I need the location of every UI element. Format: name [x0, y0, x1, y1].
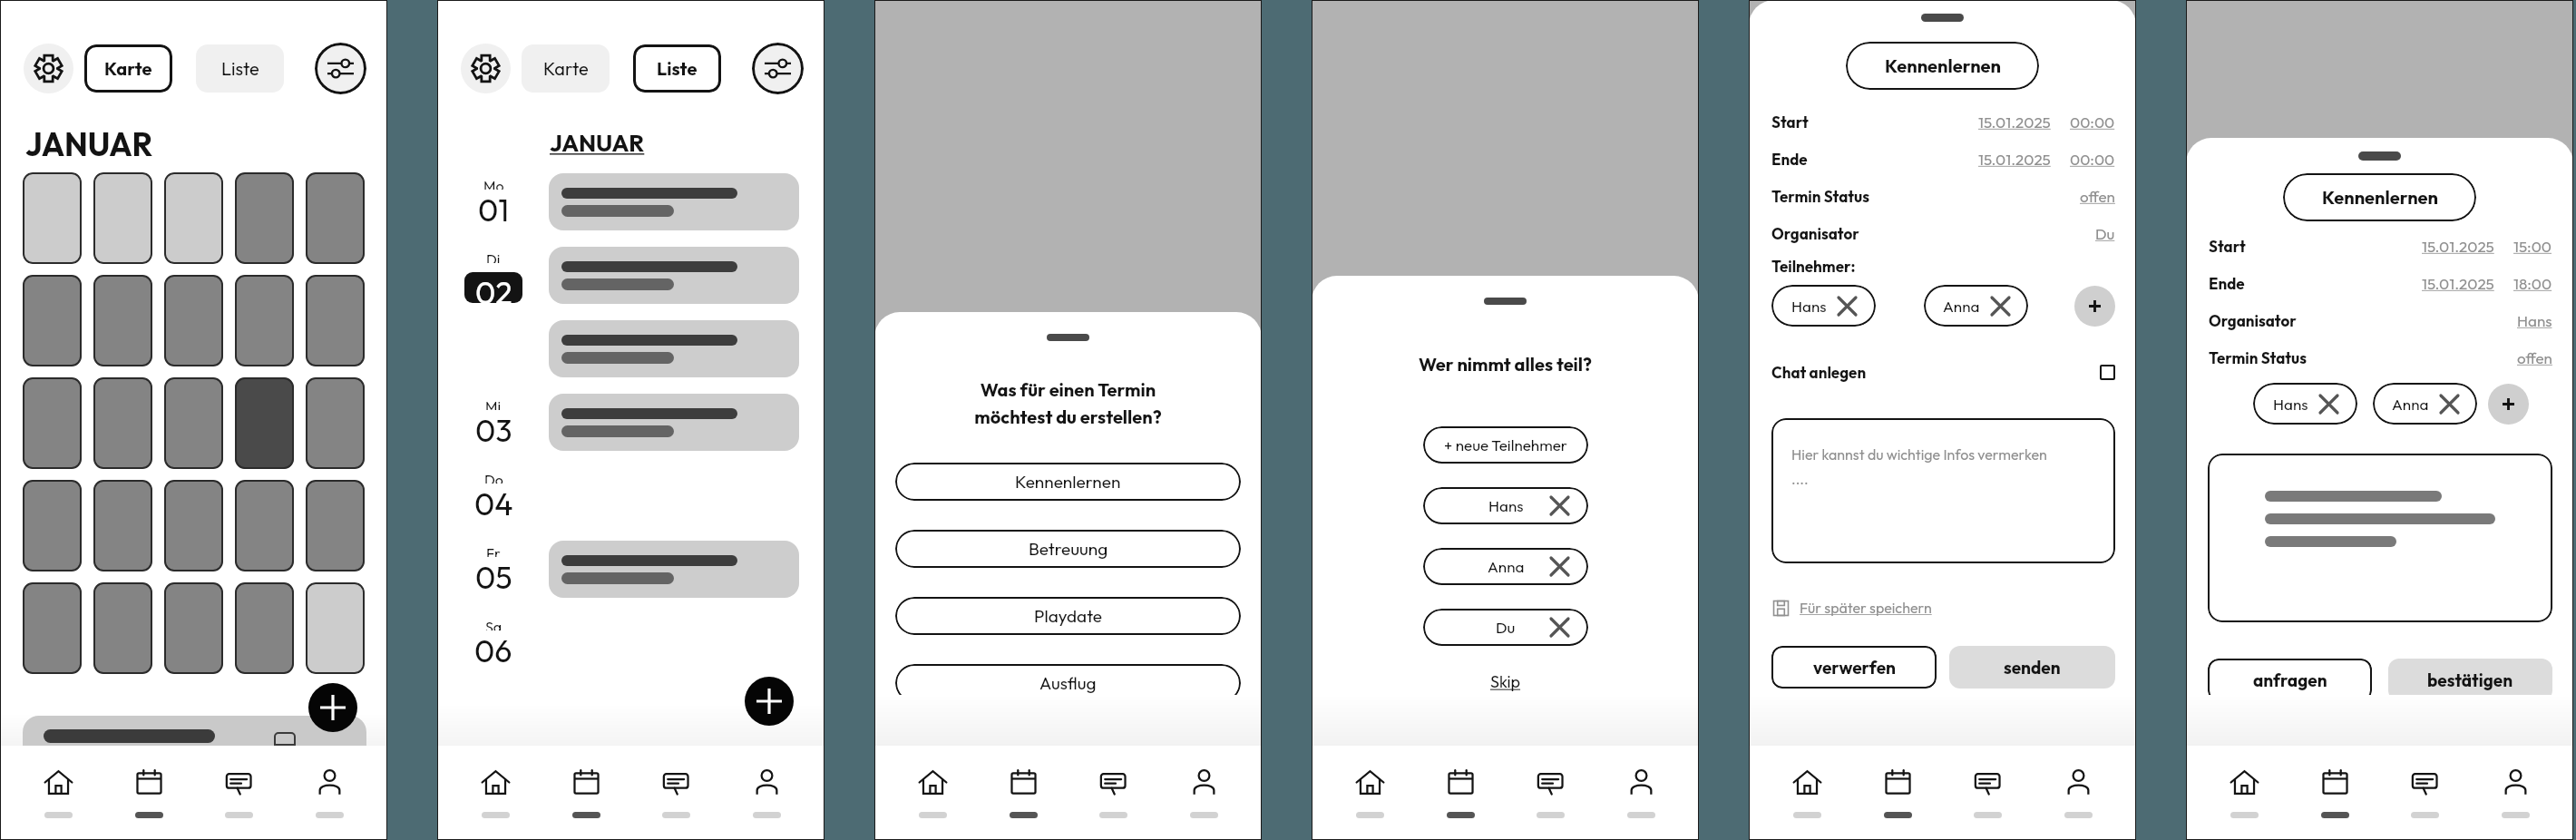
- button[interactable]: Kennenlernen: [1846, 42, 2039, 90]
- button[interactable]: Hans: [2517, 311, 2552, 330]
- button[interactable]: Filter: [752, 43, 804, 94]
- button[interactable]: Neuer Termin: [745, 677, 794, 726]
- button[interactable]: Home: [25, 746, 91, 840]
- button[interactable]: [235, 172, 294, 264]
- button[interactable]: 18:00: [2513, 274, 2552, 293]
- button[interactable]: Für später speichern: [1772, 599, 1932, 617]
- button[interactable]: Einstellungen: [24, 44, 73, 93]
- button[interactable]: Kalender: [1865, 746, 1930, 840]
- button[interactable]: [93, 480, 152, 571]
- button[interactable]: 15.01.2025: [1978, 150, 2051, 169]
- button[interactable]: Kalender: [2302, 746, 2367, 840]
- button[interactable]: Kennenlernen: [2283, 173, 2476, 221]
- button[interactable]: Liste: [633, 44, 721, 93]
- button[interactable]: Profil: [734, 746, 799, 840]
- button[interactable]: [549, 247, 799, 304]
- button[interactable]: [549, 173, 799, 230]
- button[interactable]: Teilnehmer hinzufügen: [2488, 384, 2529, 425]
- button[interactable]: [549, 541, 799, 598]
- button[interactable]: Hans: [1771, 285, 1876, 327]
- button[interactable]: offen: [2517, 348, 2552, 367]
- button[interactable]: [23, 480, 82, 571]
- button[interactable]: Anna: [2373, 383, 2477, 425]
- button[interactable]: Kalender: [990, 746, 1056, 840]
- button[interactable]: Kennenlernen: [895, 463, 1241, 501]
- button[interactable]: senden: [1949, 646, 2115, 689]
- button[interactable]: [164, 480, 223, 571]
- button[interactable]: Home: [1337, 746, 1402, 840]
- button[interactable]: [549, 320, 799, 377]
- button[interactable]: Teilnehmer hinzufügen: [2074, 286, 2115, 327]
- button[interactable]: Neuer Termin: [308, 683, 357, 732]
- button[interactable]: [235, 275, 294, 366]
- button[interactable]: [23, 275, 82, 366]
- button[interactable]: Hans: [1423, 487, 1588, 524]
- button[interactable]: Filter: [315, 43, 366, 94]
- button[interactable]: [235, 582, 294, 674]
- button[interactable]: Chat anlegen: [2100, 365, 2115, 380]
- button[interactable]: [164, 275, 223, 366]
- button[interactable]: Profil: [2483, 746, 2548, 840]
- button[interactable]: Hier kannst du wichtige Infos vermerken …: [1771, 418, 2115, 563]
- button[interactable]: Karte: [522, 44, 610, 93]
- button[interactable]: Skip: [1312, 671, 1699, 692]
- button[interactable]: [235, 377, 294, 469]
- button[interactable]: 00:00: [2070, 112, 2115, 132]
- button[interactable]: [93, 582, 152, 674]
- button[interactable]: [23, 716, 366, 746]
- button[interactable]: [306, 275, 365, 366]
- button[interactable]: Home: [900, 746, 965, 840]
- button[interactable]: Chat: [206, 746, 271, 840]
- button[interactable]: Profil: [1608, 746, 1673, 840]
- button[interactable]: [23, 582, 82, 674]
- button[interactable]: Profil: [2045, 746, 2111, 840]
- button[interactable]: [306, 377, 365, 469]
- button[interactable]: Du: [2095, 224, 2115, 243]
- button[interactable]: Kalender: [1428, 746, 1493, 840]
- button[interactable]: [235, 480, 294, 571]
- button[interactable]: Karte: [84, 44, 172, 93]
- button[interactable]: 15:00: [2513, 237, 2552, 256]
- button[interactable]: Du: [1423, 609, 1588, 646]
- button[interactable]: [93, 377, 152, 469]
- button[interactable]: Betreuung: [895, 530, 1241, 568]
- button[interactable]: Chat: [643, 746, 708, 840]
- button[interactable]: offen: [2080, 187, 2115, 206]
- button[interactable]: Liste: [196, 44, 284, 93]
- button[interactable]: [164, 582, 223, 674]
- button[interactable]: [306, 172, 365, 264]
- button[interactable]: Hans: [2253, 383, 2357, 425]
- button[interactable]: [306, 582, 365, 674]
- button[interactable]: Home: [463, 746, 528, 840]
- button[interactable]: [164, 172, 223, 264]
- button[interactable]: Profil: [1171, 746, 1236, 840]
- button[interactable]: [23, 377, 82, 469]
- button[interactable]: Chat: [1955, 746, 2020, 840]
- button[interactable]: 15.01.2025: [1978, 112, 2051, 132]
- button[interactable]: Ausflug: [895, 664, 1241, 702]
- button[interactable]: Kalender: [116, 746, 181, 840]
- button[interactable]: Home: [2211, 746, 2277, 840]
- button[interactable]: [549, 394, 799, 451]
- button[interactable]: [306, 480, 365, 571]
- button[interactable]: Einstellungen: [461, 44, 511, 93]
- button[interactable]: Home: [1774, 746, 1839, 840]
- button[interactable]: Anna: [1423, 548, 1588, 585]
- button[interactable]: Profil: [297, 746, 362, 840]
- button[interactable]: Chat: [2392, 746, 2457, 840]
- button[interactable]: Anna: [1924, 285, 2028, 327]
- button[interactable]: [93, 275, 152, 366]
- button[interactable]: [93, 172, 152, 264]
- button[interactable]: bestätigen: [2388, 659, 2552, 701]
- button[interactable]: Playdate: [895, 597, 1241, 635]
- button[interactable]: 15.01.2025: [2422, 237, 2494, 256]
- button[interactable]: 00:00: [2070, 150, 2115, 169]
- button[interactable]: [164, 377, 223, 469]
- button[interactable]: anfragen: [2208, 659, 2372, 701]
- button[interactable]: 15.01.2025: [2422, 274, 2494, 293]
- button[interactable]: Kalender: [553, 746, 619, 840]
- button[interactable]: Chat: [1080, 746, 1146, 840]
- button[interactable]: Chat: [1517, 746, 1583, 840]
- button[interactable]: + neue Teilnehmer: [1423, 426, 1588, 464]
- button[interactable]: verwerfen: [1771, 646, 1937, 689]
